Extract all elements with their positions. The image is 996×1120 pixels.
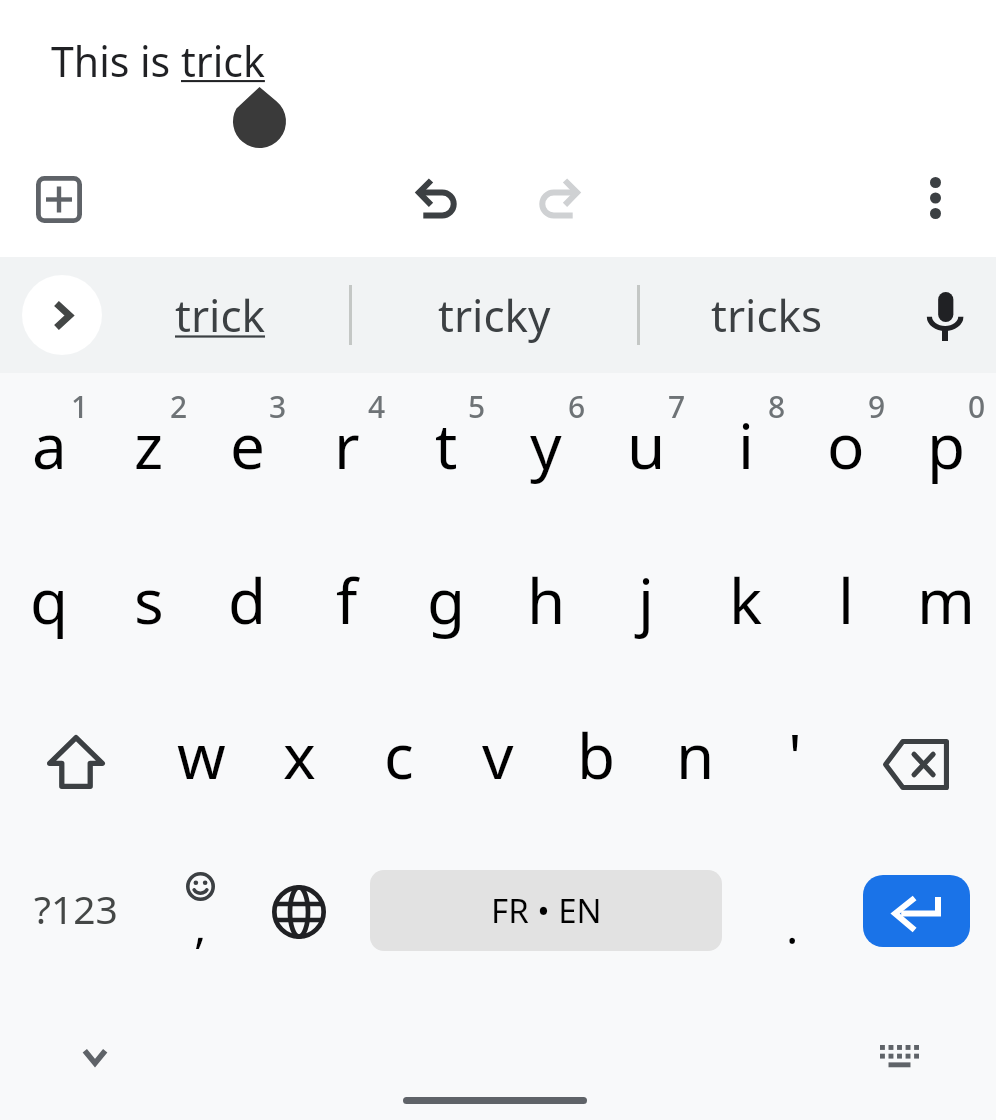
staticText: t <box>435 403 458 487</box>
button[interactable]: Enter <box>863 875 970 947</box>
staticText: FR • EN <box>491 888 602 933</box>
button[interactable]: Switch keyboard <box>859 1020 939 1092</box>
button[interactable]: f <box>297 522 396 677</box>
button[interactable]: 6 <box>496 375 596 530</box>
staticText: k <box>729 558 763 642</box>
staticText: . <box>786 895 799 958</box>
staticText: tricky <box>438 285 551 345</box>
staticText: 6 <box>568 386 586 427</box>
staticText: f <box>336 558 358 642</box>
staticText: 9 <box>868 386 886 427</box>
staticText: n <box>676 713 715 797</box>
button[interactable]: ?123 <box>0 831 152 986</box>
button[interactable]: Redo <box>521 160 597 236</box>
button[interactable]: 9 <box>796 375 896 530</box>
staticText: a <box>32 403 67 487</box>
staticText: This is <box>51 33 181 89</box>
button[interactable]: w <box>152 677 250 832</box>
staticText: g <box>427 558 466 642</box>
button[interactable]: . <box>722 831 862 986</box>
button[interactable]: tricks <box>667 257 867 373</box>
staticText: i <box>738 403 754 487</box>
button[interactable]: 4 <box>297 375 396 530</box>
staticText: z <box>134 403 164 487</box>
staticText: q <box>30 558 69 642</box>
staticText: v <box>482 713 514 797</box>
staticText: b <box>577 713 616 797</box>
button[interactable]: s <box>99 522 198 677</box>
staticText: 4 <box>368 386 386 427</box>
staticText: r <box>334 403 360 487</box>
staticText: j <box>638 558 654 642</box>
button[interactable]: Change language <box>252 831 352 986</box>
staticText: trick <box>175 285 266 345</box>
button[interactable]: trick <box>120 257 320 373</box>
button[interactable]: x <box>250 677 349 832</box>
button[interactable]: 3 <box>198 375 297 530</box>
button[interactable]: 7 <box>596 375 696 530</box>
staticText: ?123 <box>34 882 118 935</box>
button[interactable]: Backspace <box>844 677 996 832</box>
button[interactable]: g <box>396 522 496 677</box>
staticText: m <box>917 558 975 642</box>
staticText: l <box>838 558 854 642</box>
staticText: y <box>530 403 562 487</box>
staticText: 7 <box>668 386 686 427</box>
button[interactable]: q <box>0 522 99 677</box>
button[interactable]: ' <box>745 677 844 832</box>
staticText: 2 <box>170 386 188 427</box>
staticText: ' <box>788 713 802 797</box>
button[interactable]: Expand suggestions <box>22 275 102 355</box>
button[interactable]: 8 <box>696 375 796 530</box>
button[interactable]: 2 <box>99 375 198 530</box>
button[interactable]: d <box>198 522 297 677</box>
staticText: 5 <box>468 386 486 427</box>
staticText: 1 <box>71 386 89 427</box>
button[interactable]: c <box>349 677 448 832</box>
staticText: trick <box>181 33 265 89</box>
staticText: s <box>134 558 164 642</box>
button[interactable]: Undo <box>398 160 474 236</box>
staticText: o <box>827 403 865 487</box>
staticText: d <box>228 558 267 642</box>
staticText: x <box>283 713 316 797</box>
staticText: u <box>627 403 666 487</box>
staticText: e <box>230 403 265 487</box>
button[interactable]: Add <box>21 161 97 237</box>
button[interactable]: m <box>896 522 996 677</box>
button[interactable]: j <box>596 522 696 677</box>
staticText: 0 <box>968 386 986 427</box>
button[interactable]: 0 <box>896 375 996 530</box>
staticText: p <box>927 403 966 487</box>
staticText: c <box>384 713 414 797</box>
button[interactable]: tricky <box>394 257 594 373</box>
button[interactable]: Emoji <box>152 831 252 986</box>
button[interactable]: FR • EN <box>370 870 722 951</box>
button[interactable]: More options <box>897 160 973 236</box>
button[interactable]: Hide keyboard <box>55 1020 135 1092</box>
button[interactable]: k <box>696 522 796 677</box>
button[interactable]: 1 <box>0 375 99 530</box>
staticText: h <box>527 558 566 642</box>
button[interactable]: l <box>796 522 896 677</box>
button[interactable]: n <box>646 677 745 832</box>
button[interactable]: Voice input <box>896 257 994 373</box>
button[interactable]: h <box>496 522 596 677</box>
staticText: tricks <box>711 285 823 345</box>
staticText: 3 <box>269 386 287 427</box>
button[interactable]: Shift <box>0 677 152 832</box>
staticText: w <box>177 713 226 797</box>
staticText: 8 <box>768 386 786 427</box>
button[interactable]: v <box>448 677 547 832</box>
button[interactable]: 5 <box>396 375 496 530</box>
staticText: , <box>194 894 207 957</box>
button[interactable]: b <box>547 677 646 832</box>
